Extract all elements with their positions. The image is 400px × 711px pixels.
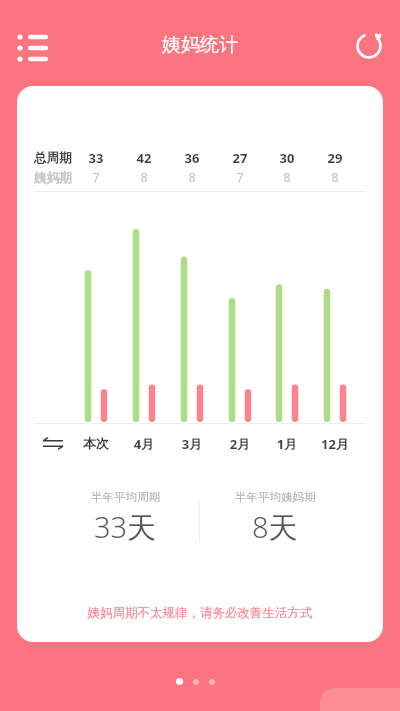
staticText: 30 (267, 149, 307, 167)
button[interactable]: 2月 (216, 435, 264, 453)
staticText: 姨妈统计 (162, 33, 238, 57)
staticText: 29 (315, 149, 355, 167)
button[interactable]: Refresh cycle (352, 27, 388, 63)
staticText: 姨妈周期不太规律，请务必改善生活方式 (17, 605, 383, 621)
staticText: 8 (315, 169, 355, 186)
button[interactable]: Switch chart (37, 430, 71, 458)
staticText: 1月 (263, 435, 311, 453)
staticText: 8 (267, 169, 307, 186)
staticText: 2月 (216, 435, 264, 453)
staticText: 8 (172, 169, 212, 186)
staticText: 半年平均周期 (91, 490, 160, 504)
staticText: 42 (124, 149, 164, 167)
staticText: 半年平均姨妈期 (235, 490, 316, 504)
staticText: 姨妈期 (34, 170, 72, 186)
staticText: 本次 (72, 435, 120, 451)
staticText: 36 (172, 149, 212, 167)
button[interactable]: 本次 (72, 435, 120, 451)
staticText: 33 (76, 149, 116, 167)
button[interactable]: 1月 (263, 435, 311, 453)
staticText: 4月 (120, 435, 168, 453)
button[interactable]: 3月 (168, 435, 216, 453)
staticText: 12月 (311, 435, 359, 453)
staticText: 33天 (94, 507, 157, 547)
staticText: 27 (220, 149, 260, 167)
button[interactable]: Menu (14, 28, 54, 68)
staticText: 8 (124, 169, 164, 186)
staticText: 总周期 (34, 150, 72, 166)
button[interactable]: 12月 (311, 435, 359, 453)
staticText: 7 (76, 169, 116, 186)
staticText: 7 (220, 169, 260, 186)
staticText: 8天 (252, 507, 298, 547)
staticText: 3月 (168, 435, 216, 453)
button[interactable]: 4月 (120, 435, 168, 453)
